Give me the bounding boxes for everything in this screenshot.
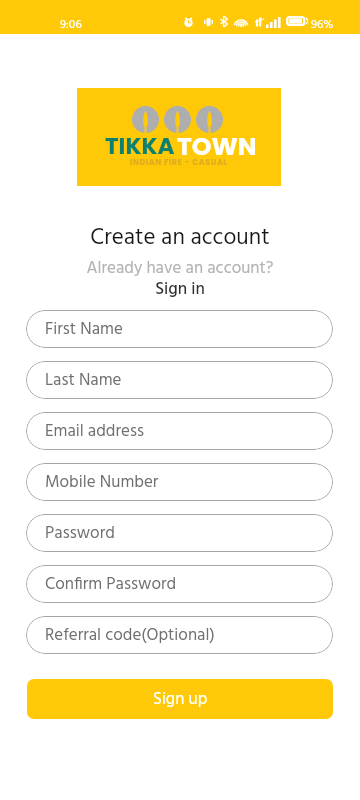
button[interactable]: Sign in (0, 276, 360, 303)
button[interactable]: First Name (26, 310, 333, 348)
staticText: Last Name (45, 367, 122, 394)
staticText: TOWN (177, 129, 257, 164)
staticText: Sign up (153, 686, 208, 713)
staticText: Referral code(Optional) (45, 622, 215, 649)
button[interactable]: Last Name (26, 361, 333, 399)
staticText: 96% (311, 15, 334, 34)
button[interactable]: Mobile Number (26, 463, 333, 501)
staticText: Email address (45, 418, 144, 445)
staticText: First Name (45, 316, 123, 343)
staticText: Create an account (0, 220, 360, 257)
staticText: Confirm Password (45, 571, 177, 598)
staticText: Mobile Number (45, 469, 159, 496)
button[interactable]: Password (26, 514, 333, 552)
staticText: 9:06 (60, 15, 82, 34)
button[interactable]: Confirm Password (26, 565, 333, 603)
staticText: INDIAN FIRE - CASUAL (130, 157, 228, 168)
staticText: TIKKA (105, 130, 175, 162)
button[interactable]: Email address (26, 412, 333, 450)
staticText: Password (45, 520, 115, 547)
button[interactable]: Sign up (27, 679, 333, 719)
staticText: Already have an account? (0, 255, 360, 282)
button[interactable]: Referral code(Optional) (26, 616, 333, 654)
